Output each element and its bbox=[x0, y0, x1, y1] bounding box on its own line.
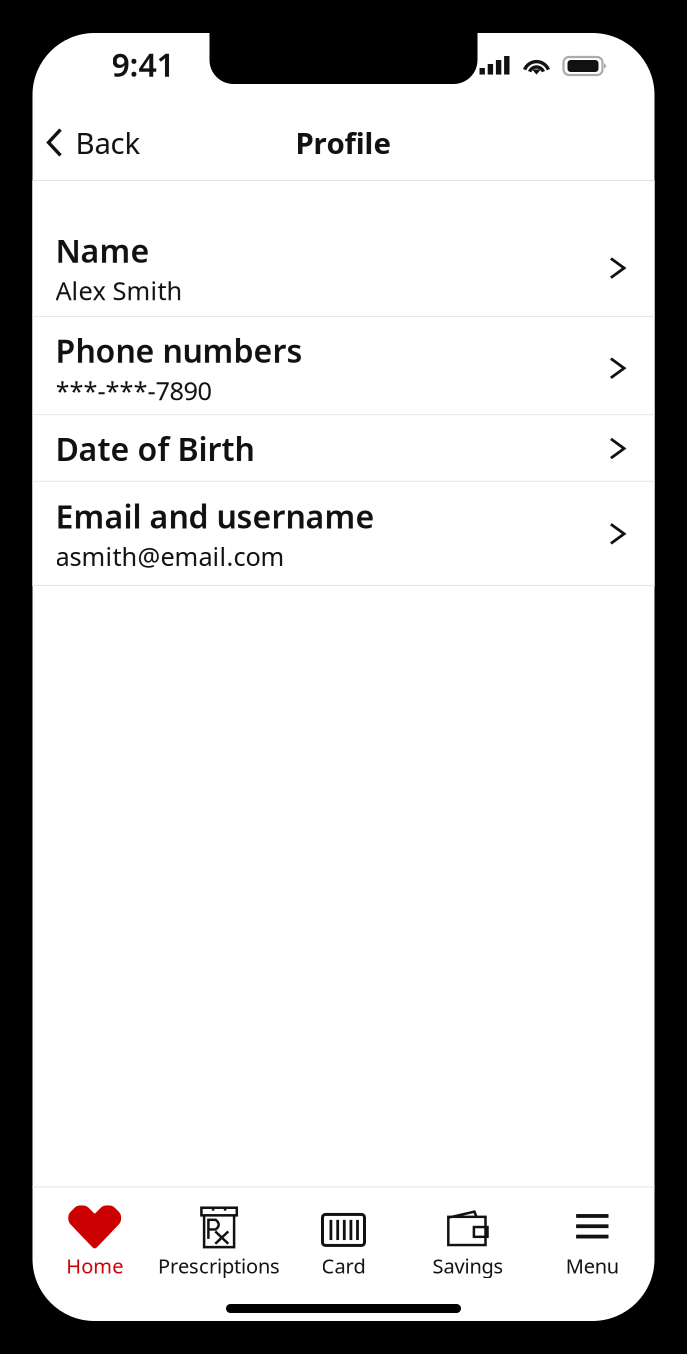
button[interactable]: Prescriptions bbox=[157, 1200, 281, 1279]
staticText: 9:41 bbox=[111, 43, 174, 85]
button[interactable]: Home bbox=[32, 1200, 157, 1279]
button[interactable]: Back bbox=[34, 115, 152, 170]
staticText: Alex Smith bbox=[55, 273, 182, 307]
staticText: Savings bbox=[432, 1252, 503, 1279]
button[interactable]: Menu bbox=[530, 1200, 654, 1279]
staticText: Home bbox=[66, 1252, 123, 1279]
staticText: Card bbox=[321, 1252, 365, 1279]
staticText: ***-***-7890 bbox=[55, 374, 211, 407]
staticText: Prescriptions bbox=[158, 1252, 280, 1279]
button[interactable]: Savings bbox=[406, 1200, 530, 1279]
button[interactable]: Card bbox=[281, 1200, 406, 1279]
staticText: Back bbox=[75, 123, 140, 162]
staticText: Menu bbox=[566, 1252, 619, 1279]
staticText: Name bbox=[55, 229, 149, 271]
staticText: asmith@email.com bbox=[55, 539, 284, 573]
staticText: Profile bbox=[295, 123, 391, 162]
staticText: Phone numbers bbox=[55, 329, 302, 372]
button[interactable]: Email and username bbox=[32, 482, 654, 586]
staticText: Date of Birth bbox=[55, 427, 254, 470]
button[interactable]: Date of Birth bbox=[32, 415, 654, 482]
staticText: Email and username bbox=[55, 495, 374, 537]
button[interactable]: Phone numbers bbox=[32, 317, 654, 415]
button[interactable]: Name bbox=[32, 181, 654, 317]
